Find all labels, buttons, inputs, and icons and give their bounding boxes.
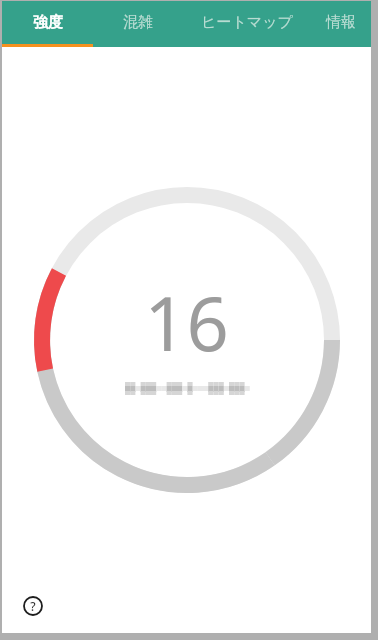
staticText: ? [30,598,36,614]
button[interactable]: 情報 [310,1,371,44]
button[interactable]: 混雑 [93,1,183,44]
staticText: 16 [144,272,229,373]
staticText: 情報 [326,13,356,32]
staticText: ヒートマップ [201,13,293,32]
staticText: 強度 [33,13,63,32]
staticText: 混雑 [123,13,153,32]
button[interactable]: 強度 [2,1,93,44]
button[interactable]: ヒートマップ [183,1,310,44]
button[interactable]: Help [20,593,46,619]
